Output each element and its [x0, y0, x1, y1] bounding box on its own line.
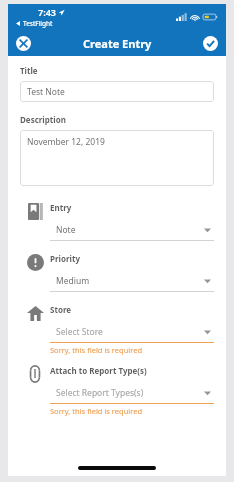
staticText: Select Report Types(s)	[56, 387, 204, 399]
staticText: Entry	[50, 202, 72, 213]
staticText: Title	[20, 65, 38, 76]
other: Attach	[20, 360, 50, 388]
other: Priority	[20, 248, 50, 276]
staticText: Attach to Report Type(s)	[50, 365, 147, 376]
staticText: Select Store	[56, 326, 204, 338]
button[interactable]: Close	[16, 36, 31, 51]
other: Entry type	[20, 197, 50, 225]
staticText: Sorry, this field is required	[50, 345, 143, 355]
staticText: Test Note	[27, 86, 65, 98]
staticText: TestFlight	[23, 19, 53, 28]
button[interactable]: Note	[50, 224, 214, 236]
staticText: Sorry, this field is required	[50, 406, 143, 416]
button[interactable]: Medium	[50, 275, 214, 287]
button[interactable]: Select Store	[50, 326, 214, 338]
staticText: Create Entry	[83, 36, 152, 51]
button[interactable]: Test Note	[20, 81, 214, 102]
staticText: November 12, 2019	[27, 136, 105, 148]
other: Store	[20, 299, 50, 327]
button[interactable]: November 12, 2019	[20, 130, 214, 186]
staticText: Note	[56, 224, 204, 236]
staticText: 7:43	[38, 6, 56, 18]
staticText: Medium	[56, 275, 204, 287]
button[interactable]: Save	[203, 36, 218, 51]
staticText: Store	[50, 304, 72, 315]
staticText: Description	[20, 114, 66, 125]
staticText: Priority	[50, 253, 80, 264]
button[interactable]: Select Report Types(s)	[50, 387, 214, 399]
